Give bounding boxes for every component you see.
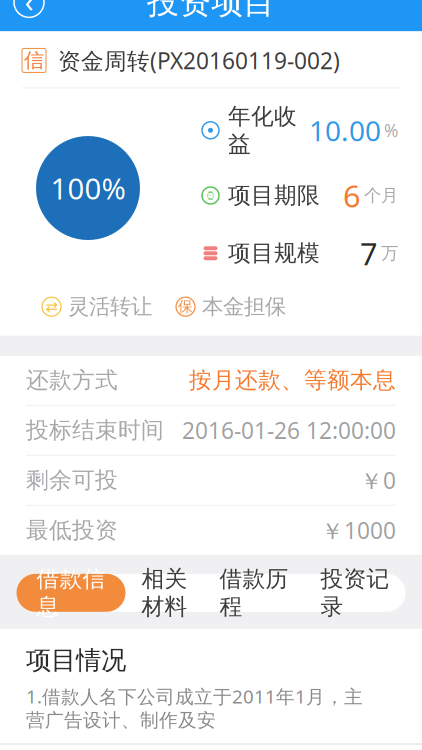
staticText: 保 [178, 298, 193, 316]
staticText: 按月还款、等额本息 [189, 366, 396, 394]
staticText: 相关材料 [141, 565, 187, 621]
button[interactable]: 借款历程 [203, 574, 304, 612]
button[interactable]: 借款信息 [16, 574, 125, 612]
staticText: 借款历程 [219, 565, 288, 621]
staticText: 项目情况 [26, 645, 126, 676]
staticText: 投资记录 [320, 565, 389, 621]
button[interactable]: Back [0, 0, 58, 27]
staticText: 10.00 [309, 112, 381, 149]
staticText: 个月 [364, 185, 398, 206]
button[interactable]: 相关材料 [125, 574, 203, 612]
staticText: 还款方式 [26, 366, 118, 394]
staticText: 万 [381, 243, 398, 264]
staticText: 6 [343, 175, 361, 216]
staticText: 借款信息 [36, 565, 105, 621]
staticText: 灵活转让 [68, 294, 152, 320]
staticText: 100% [50, 169, 125, 208]
staticText: 7 [360, 233, 378, 274]
staticText: % [384, 119, 398, 142]
staticText: 项目规模 [228, 239, 320, 267]
staticText: 投标结束时间 [26, 416, 164, 444]
staticText: ⌚︎ [204, 187, 216, 204]
staticText: 资金周转(PX20160119-002) [58, 45, 340, 75]
staticText: 投资项目 [147, 0, 275, 22]
staticText: 剩余可投 [26, 466, 118, 494]
button[interactable]: 投资记录 [304, 574, 405, 612]
staticText: 2016-01-26 12:00:00 [182, 415, 396, 445]
staticText: 项目期限 [228, 182, 320, 209]
staticText: 信 [24, 48, 44, 73]
staticText: ￥0 [360, 465, 396, 495]
staticText: 年化收益 [228, 102, 297, 158]
staticText: 本金担保 [202, 294, 286, 320]
staticText: ‹ [24, 0, 33, 20]
staticText: 1.借款人名下公司成立于2011年1月，主营广告设计、制作及安 [26, 684, 363, 732]
staticText: 最低投资 [26, 516, 118, 544]
staticText: ￥1000 [321, 515, 396, 545]
staticText: ⇄ [45, 298, 57, 315]
